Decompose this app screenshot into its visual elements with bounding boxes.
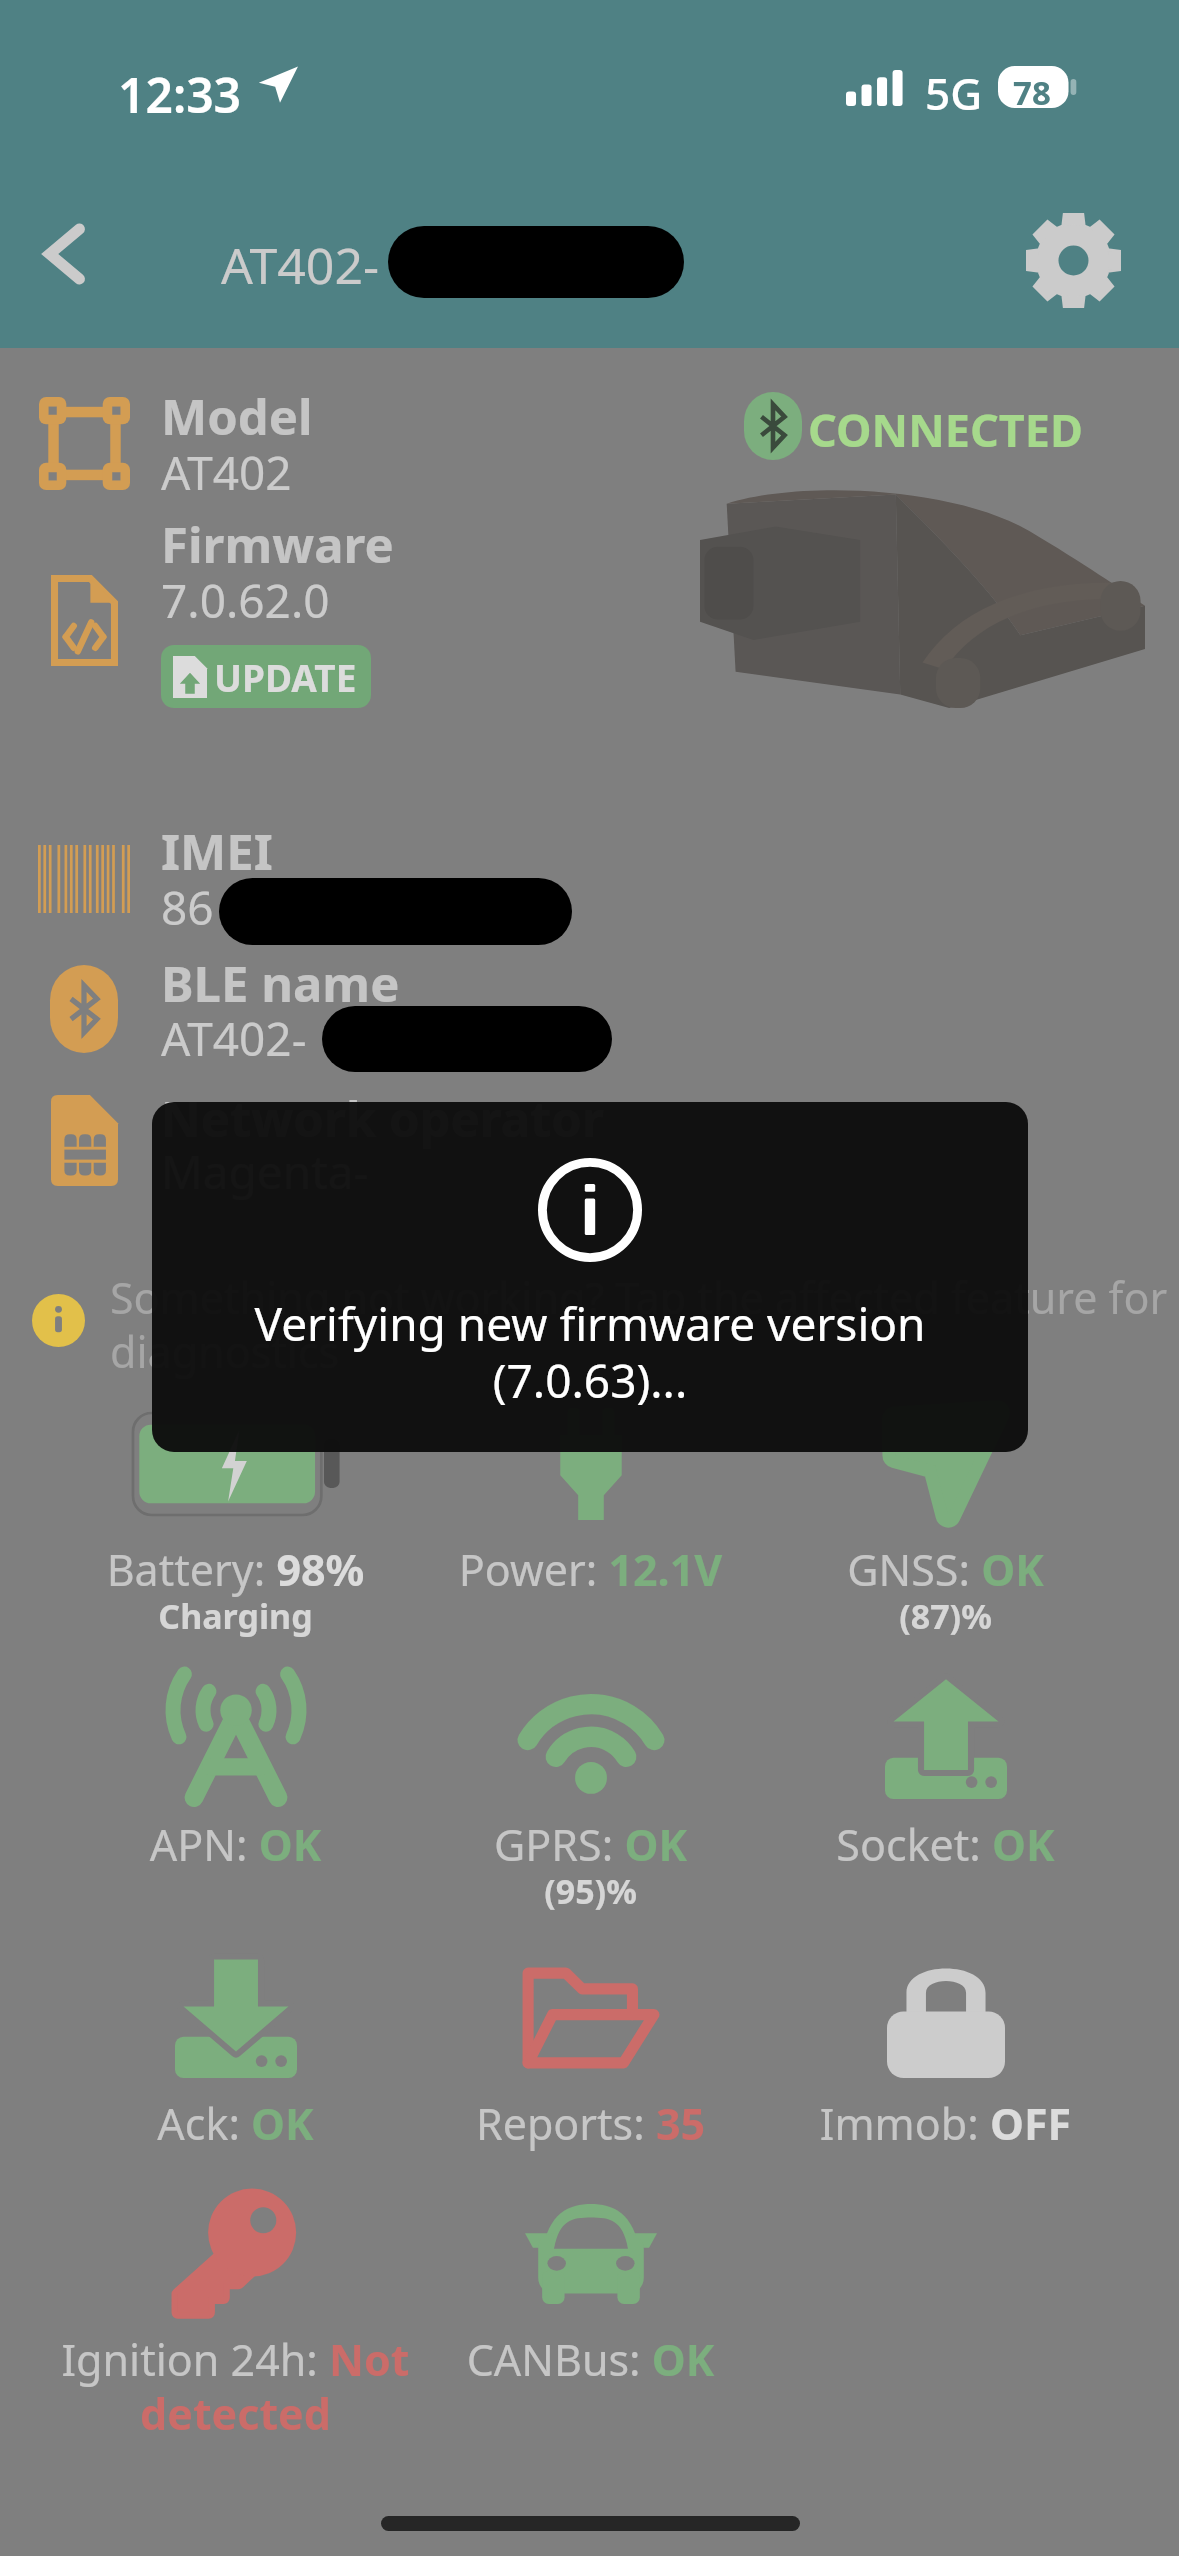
staticText: APN: OK: [66, 1815, 405, 1874]
button[interactable]: APN: OK: [58, 1683, 413, 1874]
staticText: Battery: 98%: [66, 1540, 405, 1599]
staticText: CONNECTED: [808, 399, 1083, 460]
staticText: Network operator: [161, 1085, 604, 1152]
button[interactable]: CANBus: OK: [413, 2198, 768, 2389]
staticText: AT402-: [161, 1007, 307, 1070]
staticText: Ack: OK: [66, 2094, 405, 2153]
staticText: Model: [161, 383, 313, 450]
button[interactable]: Socket: OK: [768, 1683, 1123, 1874]
staticText: IMEI: [161, 818, 273, 885]
staticText: Something not working? Tap the affected …: [110, 1268, 1179, 1381]
staticText: GPRS: OK: [421, 1815, 760, 1874]
button[interactable]: Ignition 24h: Not detected: [58, 2198, 413, 2443]
staticText: UPDATE: [214, 652, 357, 702]
staticText: Ignition 24h: Not detected: [58, 2330, 413, 2443]
button[interactable]: UPDATE: [161, 645, 371, 708]
staticText: AT402: [161, 441, 292, 504]
button[interactable]: Battery: 98%: [58, 1408, 413, 1645]
staticText: AT402-: [221, 231, 380, 299]
staticText: GNSS: OK: [776, 1540, 1115, 1599]
staticText: (95)%: [413, 1868, 768, 1914]
staticText: 5G: [925, 63, 983, 123]
staticText: Socket: OK: [776, 1815, 1115, 1874]
staticText: 78: [998, 70, 1066, 112]
staticText: CANBus: OK: [421, 2330, 760, 2389]
staticText: 12:33: [118, 62, 242, 127]
staticText: Reports: 35: [421, 2094, 760, 2153]
staticText: BLE name: [161, 950, 400, 1017]
staticText: Verifying new firmware version (7.0.63).…: [242, 1292, 938, 1411]
staticText: Immob: OFF: [776, 2094, 1115, 2153]
button[interactable]: Settings: [1028, 215, 1119, 306]
button[interactable]: Back: [18, 206, 114, 302]
button[interactable]: Power: 12.1V: [413, 1408, 768, 1599]
button[interactable]: GPRS: OK: [413, 1683, 768, 1920]
button[interactable]: Reports: 35: [413, 1962, 768, 2153]
button[interactable]: Ack: OK: [58, 1962, 413, 2153]
staticText: Charging: [58, 1593, 413, 1639]
staticText: 7.0.62.0: [161, 569, 330, 632]
staticText: Power: 12.1V: [421, 1540, 760, 1599]
button[interactable]: Immob: OFF: [768, 1962, 1123, 2153]
button[interactable]: GNSS: OK: [768, 1408, 1123, 1645]
staticText: (87)%: [768, 1593, 1123, 1639]
staticText: Firmware: [161, 511, 394, 578]
staticText: 86: [161, 876, 214, 939]
